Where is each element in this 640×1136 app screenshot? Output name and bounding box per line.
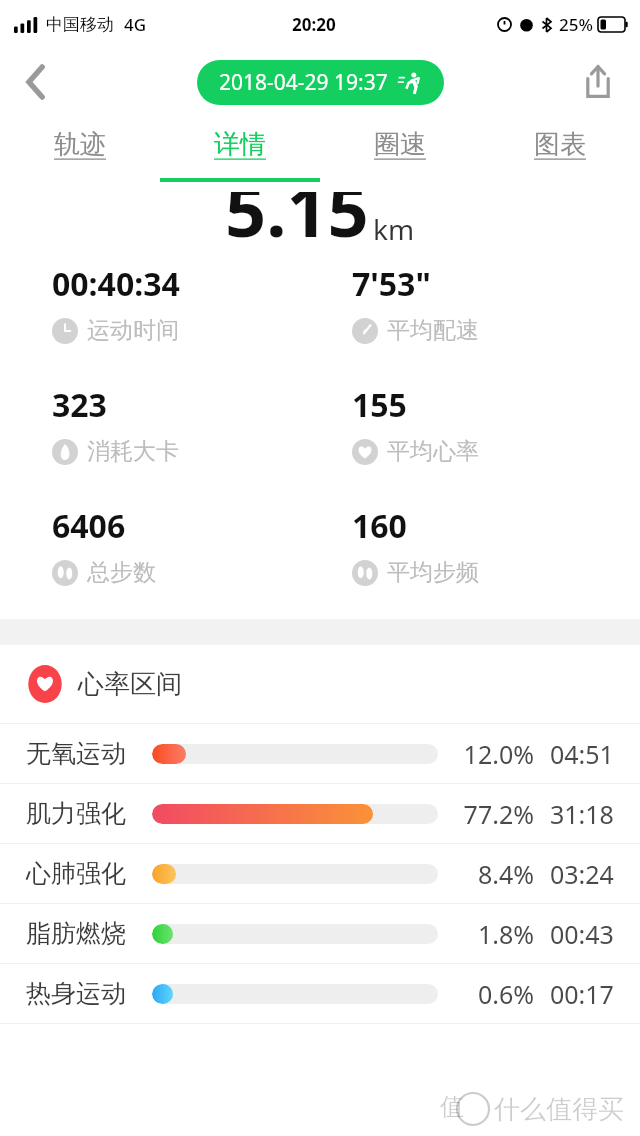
staticText: 2018-04-29 19:37 (219, 68, 388, 97)
staticText: 323 (52, 383, 107, 427)
staticText: 总步数 (87, 558, 156, 587)
button[interactable]: 肌力强化 (0, 784, 640, 843)
staticText: 平均配速 (387, 316, 479, 345)
staticText: 00:40:34 (52, 262, 180, 306)
staticText: 4G (124, 13, 147, 36)
staticText: 中国移动 (46, 14, 114, 35)
staticText: 77.2% (438, 797, 534, 831)
staticText: 心率区间 (78, 668, 182, 701)
button[interactable]: 心率区间 (0, 645, 640, 723)
staticText: 03:24 (550, 857, 614, 891)
staticText: 无氧运动 (26, 738, 134, 769)
button[interactable]: 图表 (480, 116, 640, 172)
button[interactable]: 2018-04-29 19:37 (197, 60, 444, 105)
staticText: 7'53" (352, 262, 431, 306)
staticText: 8.4% (438, 857, 534, 891)
staticText: 什么值得买 (494, 1093, 624, 1126)
staticText: 160 (352, 504, 407, 548)
staticText: 20:20 (292, 13, 336, 36)
staticText: 5.15 (225, 160, 369, 258)
button[interactable]: 轨迹 (0, 116, 160, 172)
staticText: 00:17 (550, 977, 614, 1011)
staticText: 平均步频 (387, 558, 479, 587)
staticText: 消耗大卡 (87, 437, 179, 466)
staticText: 热身运动 (26, 978, 134, 1009)
staticText: 25% (559, 13, 593, 36)
button[interactable]: 心肺强化 (0, 844, 640, 903)
staticText: 1.8% (438, 917, 534, 951)
staticText: 值 (440, 1092, 464, 1122)
staticText: 运动时间 (87, 316, 179, 345)
staticText: 详情 (214, 128, 266, 161)
staticText: 脂肪燃烧 (26, 918, 134, 949)
button[interactable]: Back (8, 54, 64, 110)
staticText: 肌力强化 (26, 798, 134, 829)
staticText: km (373, 210, 415, 248)
staticText: 6406 (52, 504, 126, 548)
staticText: 圈速 (374, 128, 426, 161)
staticText: 12.0% (438, 737, 534, 771)
staticText: 04:51 (550, 737, 614, 771)
staticText: 155 (352, 383, 407, 427)
staticText: 00:43 (550, 917, 614, 951)
button[interactable]: 热身运动 (0, 964, 640, 1023)
button[interactable]: 圈速 (320, 116, 480, 172)
button[interactable]: Share (570, 54, 626, 110)
button[interactable]: 脂肪燃烧 (0, 904, 640, 963)
staticText: 0.6% (438, 977, 534, 1011)
staticText: 图表 (534, 128, 586, 161)
button[interactable]: 详情 (160, 116, 320, 172)
button[interactable]: 无氧运动 (0, 724, 640, 783)
staticText: 轨迹 (54, 128, 106, 161)
staticText: 平均心率 (387, 437, 479, 466)
staticText: 31:18 (550, 797, 614, 831)
staticText: 心肺强化 (26, 858, 134, 889)
